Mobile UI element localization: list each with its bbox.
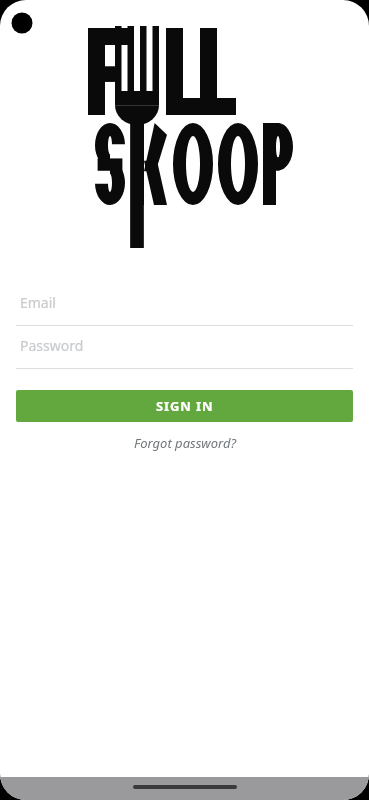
staticText: Password xyxy=(20,336,84,355)
other: Home xyxy=(133,785,237,789)
button[interactable]: Forgot password? xyxy=(0,432,369,454)
button[interactable]: SIGN IN xyxy=(16,390,353,422)
staticText: Email xyxy=(20,293,56,312)
button[interactable]: Email xyxy=(16,293,353,326)
button[interactable]: Password xyxy=(16,336,353,369)
staticText: Forgot password? xyxy=(134,434,236,452)
staticText: SIGN IN xyxy=(156,397,214,415)
